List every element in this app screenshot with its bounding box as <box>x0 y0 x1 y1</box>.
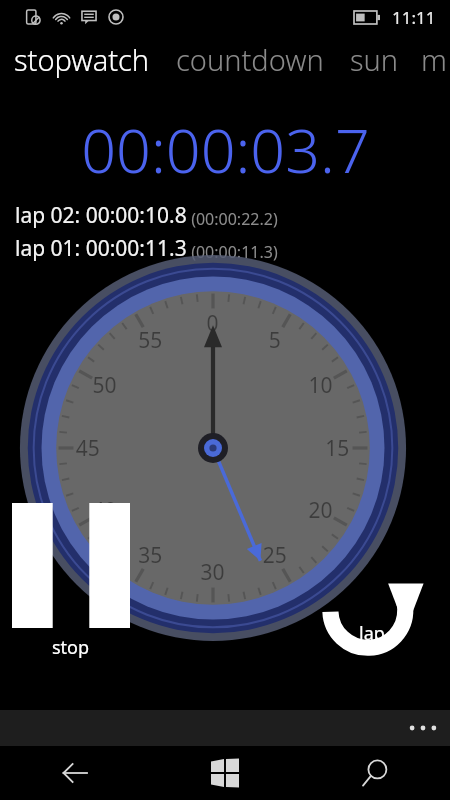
staticText: lap 02: 00:00:10.8 <box>15 201 187 230</box>
staticText: 11:11 <box>392 6 436 29</box>
staticText: (00:00:11.3) <box>187 241 278 263</box>
staticText: lap 01: 00:00:11.3 <box>15 234 187 263</box>
staticText: 00:00:03.7 <box>81 108 370 191</box>
button[interactable]: Search <box>300 746 450 800</box>
staticText: lap <box>359 621 385 646</box>
button[interactable]: sun <box>350 40 399 79</box>
staticText: countdown <box>176 40 324 79</box>
button[interactable]: Stopwatch dial <box>0 0 450 800</box>
staticText: stop <box>52 635 90 660</box>
button[interactable]: More options <box>396 710 450 746</box>
staticText: stopwatch <box>14 40 150 79</box>
button[interactable]: Back <box>0 746 150 800</box>
button[interactable]: m <box>421 40 447 79</box>
button[interactable]: stop <box>12 503 130 660</box>
staticText: (00:00:22.2) <box>187 208 278 230</box>
button[interactable]: stopwatch <box>14 40 150 79</box>
staticText: m <box>421 40 447 79</box>
button[interactable]: Start <box>150 746 300 800</box>
staticText: sun <box>350 40 399 79</box>
button[interactable]: lap <box>320 547 424 646</box>
button[interactable]: countdown <box>176 40 324 79</box>
